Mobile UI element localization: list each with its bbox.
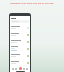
button[interactable]	[10, 52, 30, 59]
staticText: Organize your work and life in one app	[10, 2, 54, 5]
button[interactable]	[10, 38, 30, 45]
button[interactable]	[10, 24, 30, 31]
button[interactable]	[10, 31, 30, 38]
button[interactable]: Add task	[19, 67, 22, 70]
button[interactable]	[11, 20, 29, 23]
button[interactable]	[10, 59, 30, 66]
button[interactable]	[10, 45, 30, 52]
